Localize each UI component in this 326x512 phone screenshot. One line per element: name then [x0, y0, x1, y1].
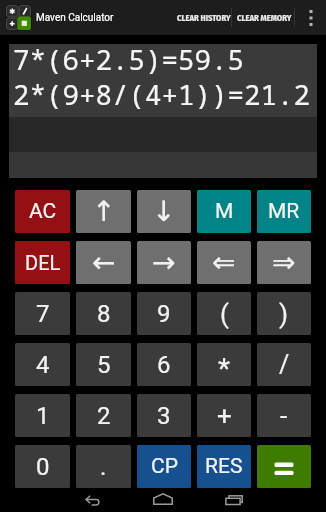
button[interactable] [295, 0, 326, 35]
button[interactable]: - [257, 394, 311, 437]
button[interactable]: CLEAR HISTORY [171, 0, 231, 35]
staticText: 5 [97, 351, 111, 379]
staticText: ← [92, 246, 116, 279]
button[interactable]: ← [76, 241, 131, 284]
staticText: 2*(9+8/(4+1))=21.2 [13, 76, 310, 113]
button[interactable]: / [257, 343, 311, 386]
staticText: 6 [157, 351, 171, 379]
button[interactable]: 1 [15, 394, 70, 437]
staticText: CLEAR HISTORY [177, 13, 231, 23]
staticText: ) [279, 299, 289, 329]
button[interactable]: . [76, 445, 131, 488]
button[interactable] [220, 488, 248, 512]
staticText: Maven Calculator [36, 12, 114, 24]
button[interactable]: 3 [137, 394, 191, 437]
staticText: CLEAR MEMORY [237, 13, 292, 23]
button[interactable]: DEL [15, 241, 70, 284]
button[interactable]: ) [257, 292, 311, 335]
button[interactable]: 0 [15, 445, 70, 488]
staticText: - [280, 401, 288, 431]
button[interactable]: RES [197, 445, 251, 488]
staticText: + [217, 401, 232, 431]
button[interactable]: MR [257, 190, 311, 233]
staticText: 7 [36, 300, 50, 328]
staticText: AC [29, 199, 57, 224]
button[interactable]: M [197, 190, 251, 233]
staticText: M [215, 199, 234, 224]
staticText: 1 [36, 402, 50, 430]
staticText: 8 [97, 300, 111, 328]
button[interactable]: 8 [76, 292, 131, 335]
staticText: 0 [36, 453, 50, 481]
button[interactable]: ⇒ [257, 241, 311, 284]
button[interactable] [148, 488, 178, 512]
button[interactable]: ⇐ [197, 241, 251, 284]
button[interactable] [79, 488, 107, 512]
staticText: 3 [157, 402, 171, 430]
button[interactable]: 4 [15, 343, 70, 386]
button[interactable]: ( [197, 292, 251, 335]
button[interactable]: 2 [76, 394, 131, 437]
staticText: / [279, 350, 290, 379]
staticText: 9 [157, 300, 171, 328]
staticText: ⇒ [272, 246, 296, 279]
staticText: CP [151, 454, 178, 479]
button[interactable]: ↑ [76, 190, 131, 233]
button[interactable]: → [137, 241, 191, 284]
staticText: ↓ [152, 195, 176, 228]
staticText: . [100, 453, 107, 481]
button[interactable]: * [197, 343, 251, 386]
button[interactable]: 5 [76, 343, 131, 386]
button[interactable]: 7 [15, 292, 70, 335]
staticText: 7*(6+2.5)=59.5 [13, 41, 244, 78]
button[interactable]: 6 [137, 343, 191, 386]
button[interactable]: AC [15, 190, 70, 233]
staticText: ↑ [92, 195, 116, 228]
button[interactable]: ↓ [137, 190, 191, 233]
staticText: ⇐ [212, 246, 236, 279]
staticText: * [218, 352, 231, 385]
staticText: MR [268, 199, 300, 224]
staticText: → [152, 246, 176, 279]
button[interactable] [257, 445, 311, 488]
button[interactable]: CLEAR MEMORY [232, 0, 294, 35]
staticText: 4 [36, 351, 50, 379]
staticText: 2 [97, 402, 111, 430]
staticText: ( [220, 299, 229, 329]
button[interactable]: CP [137, 445, 191, 488]
button[interactable]: 9 [137, 292, 191, 335]
staticText: DEL [25, 251, 61, 274]
staticText: RES [205, 454, 243, 479]
button[interactable]: + [197, 394, 251, 437]
